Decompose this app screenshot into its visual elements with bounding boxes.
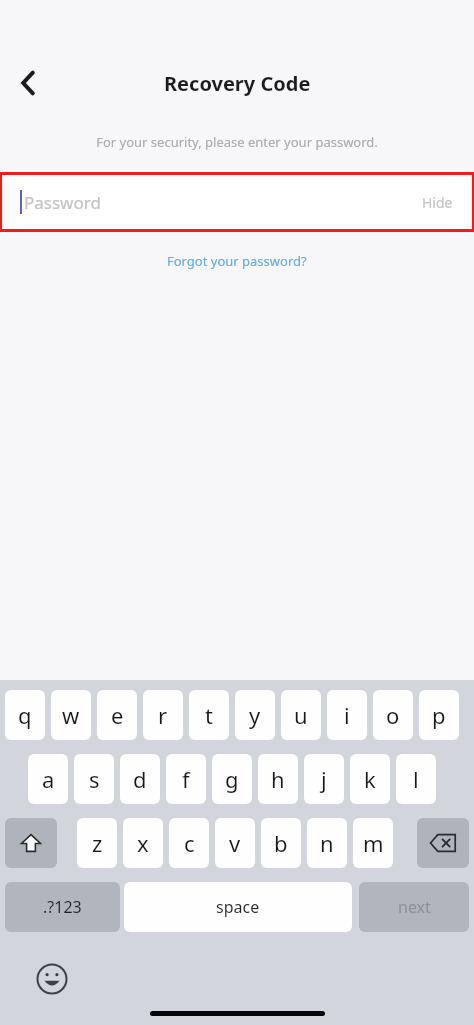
button[interactable]: h [258,754,298,804]
button[interactable]: space [124,882,352,932]
button[interactable]: w [51,690,91,740]
button[interactable]: Forgot your password? [157,249,317,273]
button[interactable]: l [396,754,436,804]
staticText: Password [24,191,101,214]
staticText: g [225,764,239,794]
staticText: t [205,700,213,730]
staticText: l [413,764,419,794]
button[interactable]: v [215,818,255,868]
staticText: r [158,700,168,730]
staticText: o [386,700,400,730]
staticText: s [89,764,100,794]
button[interactable]: k [350,754,390,804]
staticText: a [42,764,55,794]
staticText: i [344,700,350,730]
button[interactable]: i [327,690,367,740]
staticText: next [398,896,431,918]
button[interactable]: g [212,754,252,804]
button[interactable]: x [123,818,163,868]
button[interactable]: d [120,754,160,804]
staticText: e [111,700,124,730]
button[interactable]: Shift [5,818,57,868]
staticText: space [216,896,260,918]
button[interactable]: c [169,818,209,868]
button[interactable]: next [359,882,469,932]
staticText: u [294,700,308,730]
button[interactable]: s [74,754,114,804]
button[interactable]: z [77,818,117,868]
staticText: For your security, please enter your pas… [0,133,474,151]
staticText: z [92,828,103,858]
button[interactable]: Backspace [417,818,469,868]
button[interactable]: n [307,818,347,868]
button[interactable]: b [261,818,301,868]
button[interactable]: o [373,690,413,740]
button[interactable]: y [235,690,275,740]
button[interactable]: .?123 [5,882,120,932]
staticText: .?123 [43,896,82,918]
staticText: h [271,764,285,794]
staticText: y [249,700,261,730]
button[interactable]: Back [6,61,50,105]
button[interactable]: r [143,690,183,740]
staticText: b [274,828,288,858]
staticText: v [229,828,241,858]
staticText: x [137,828,149,858]
button[interactable]: Hide [403,183,472,222]
staticText: j [321,764,327,794]
button[interactable]: f [166,754,206,804]
staticText: w [62,700,80,730]
button[interactable]: a [28,754,68,804]
staticText: Hide [422,193,453,212]
button[interactable]: e [97,690,137,740]
staticText: n [320,828,334,858]
button[interactable]: q [5,690,45,740]
staticText: k [364,764,376,794]
button[interactable]: p [419,690,459,740]
staticText: q [18,700,32,730]
staticText: d [133,764,147,794]
button[interactable]: Emoji [28,955,76,1003]
button[interactable]: j [304,754,344,804]
staticText: Recovery Code [164,70,311,97]
staticText: f [182,764,190,794]
staticText: p [432,700,446,730]
button[interactable]: m [353,818,393,868]
staticText: m [363,828,384,858]
staticText: c [184,828,195,858]
button[interactable]: t [189,690,229,740]
staticText: Forgot your password? [167,252,307,270]
button[interactable]: Password [2,175,472,229]
button[interactable]: u [281,690,321,740]
